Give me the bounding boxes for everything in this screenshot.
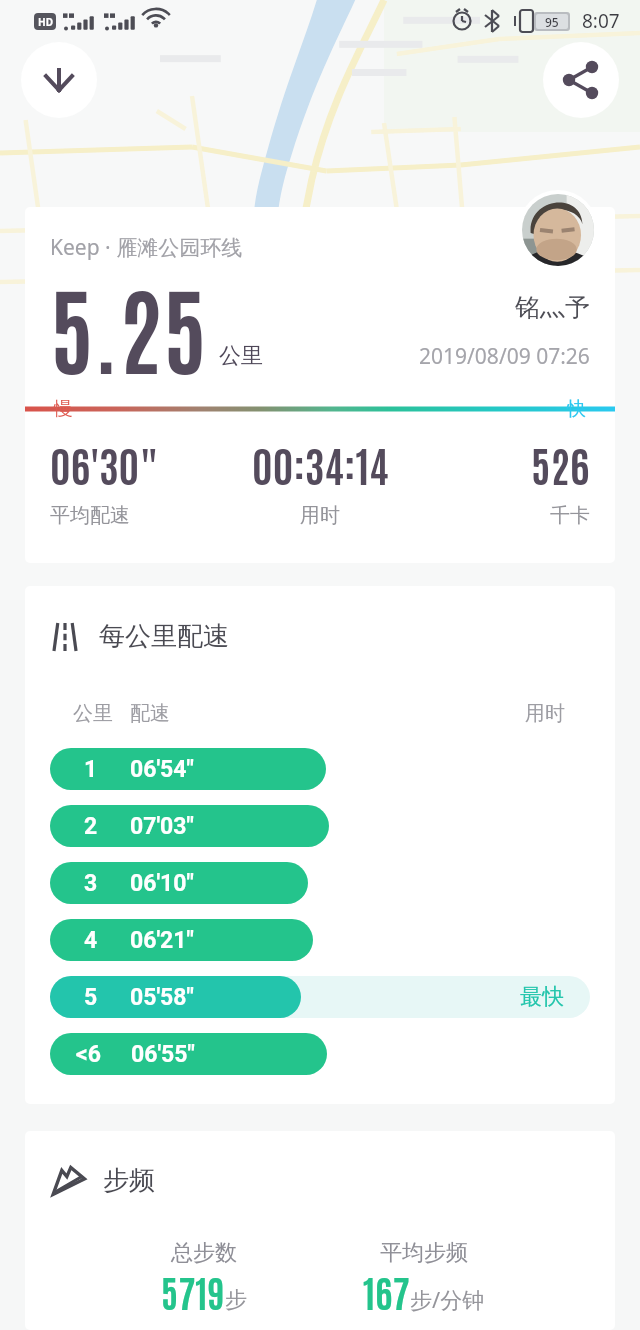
staticText: 用时 [525, 701, 565, 726]
staticText: 步 [225, 1286, 247, 1314]
staticText: 07'03" [130, 813, 194, 840]
button[interactable]: 2 [50, 805, 329, 847]
staticText: 快 [567, 397, 586, 421]
staticText: 00:34:14 [252, 436, 389, 490]
staticText: 平均配速 [50, 503, 130, 528]
staticText: 配速 [130, 701, 170, 726]
button[interactable]: 每公里配速 [53, 620, 229, 653]
button[interactable]: 3 [50, 862, 308, 904]
staticText: 公里 [73, 701, 113, 726]
staticText: 千卡 [550, 503, 590, 528]
staticText: 公里 [219, 342, 263, 370]
staticText: 06'21" [130, 927, 194, 954]
staticText: 慢 [54, 397, 73, 421]
button[interactable]: 1 [50, 748, 326, 790]
button[interactable]: <6 [50, 1033, 327, 1075]
staticText: 最快 [520, 983, 564, 1011]
staticText: 5 [84, 984, 98, 1011]
staticText: 06'54" [130, 756, 194, 783]
staticText: 5.25 [50, 264, 208, 387]
staticText: 8:07 [582, 8, 620, 34]
staticText: 06'55" [131, 1041, 195, 1068]
staticText: 06'30" [50, 436, 159, 490]
staticText: 2019/08/09 07:26 [419, 342, 590, 371]
staticText: 2 [84, 813, 98, 840]
staticText: Keep · 雁滩公园环线 [50, 233, 243, 262]
staticText: 铭灬予 [515, 292, 590, 323]
staticText: 05'58" [130, 984, 194, 1011]
staticText: <6 [76, 1041, 101, 1068]
staticText: 06'10" [130, 870, 194, 897]
staticText: 步频 [103, 1164, 155, 1197]
staticText: 用时 [300, 503, 340, 528]
staticText: 4 [84, 927, 98, 954]
staticText: HD [38, 15, 53, 29]
staticText: 总步数 [171, 1239, 237, 1267]
button[interactable]: 步频 [51, 1163, 155, 1197]
staticText: 平均步频 [380, 1239, 468, 1267]
staticText: 每公里配速 [99, 620, 229, 653]
staticText: 526 [531, 436, 590, 490]
staticText: 95 [545, 14, 559, 29]
button[interactable]: Download [21, 42, 97, 118]
staticText: 167 [363, 1267, 410, 1315]
staticText: 5719 [161, 1267, 225, 1315]
staticText: 1 [84, 756, 98, 783]
button[interactable]: 4 [50, 919, 313, 961]
button[interactable]: 5 [50, 976, 301, 1018]
staticText: 3 [84, 870, 98, 897]
button[interactable]: Share [543, 42, 619, 118]
staticText: 步/分钟 [410, 1284, 485, 1314]
button[interactable]: User avatar [522, 194, 594, 266]
